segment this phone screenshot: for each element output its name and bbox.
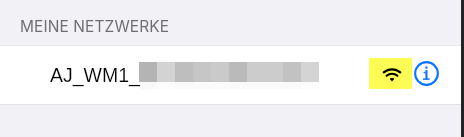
button[interactable]: AJ_WM1_: [0, 46, 464, 104]
button[interactable]: More Info: [414, 61, 439, 86]
staticText: AJ_WM1_: [50, 64, 140, 86]
staticText: MEINE NETZWERKE: [20, 17, 170, 36]
button[interactable]: Wi-Fi connected: [369, 58, 412, 89]
